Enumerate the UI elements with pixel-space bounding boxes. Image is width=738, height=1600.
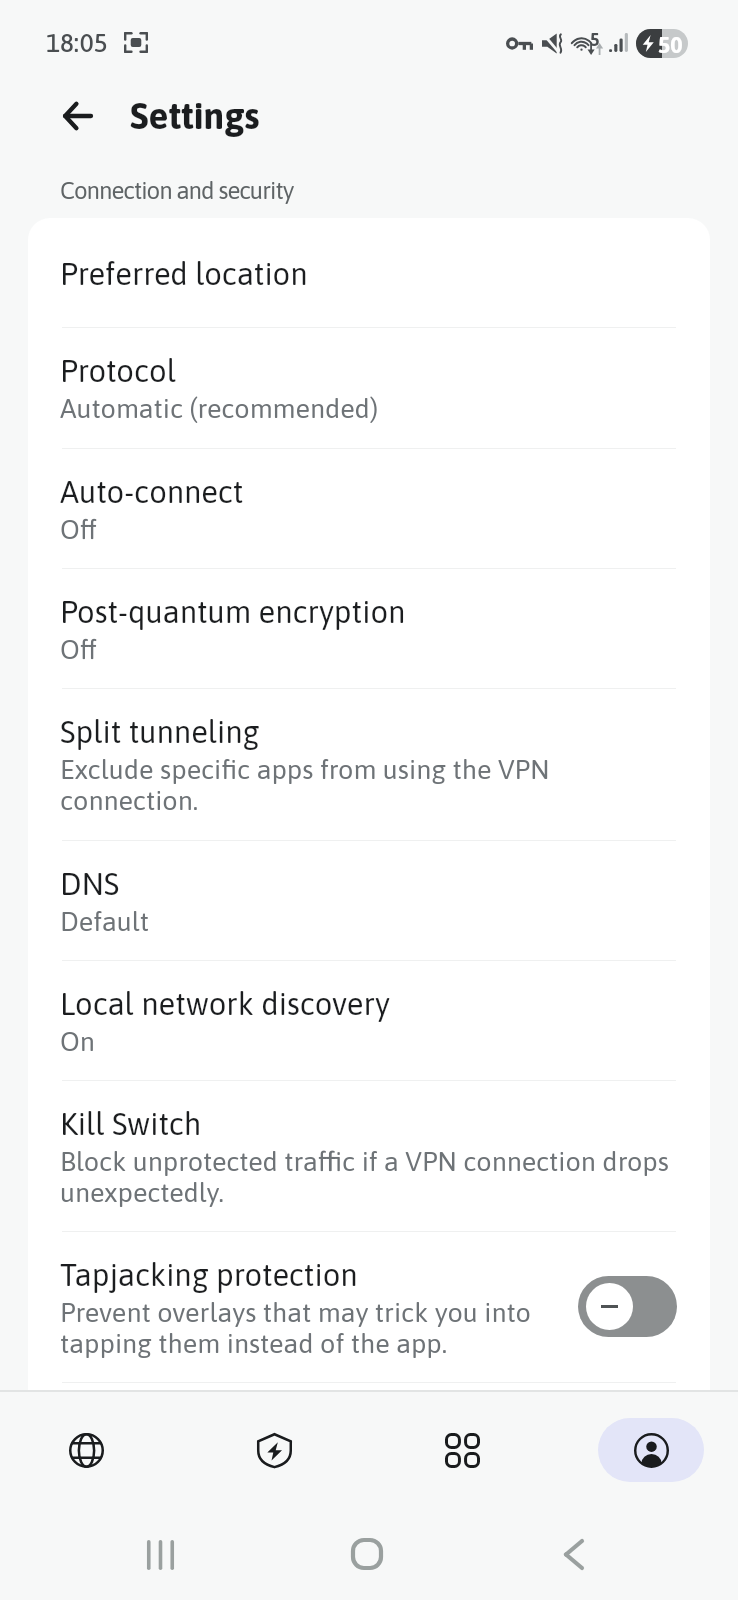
button[interactable]: Account	[598, 1418, 704, 1482]
button[interactable]: Recents	[131, 1526, 189, 1584]
staticText: Tapjacking protection	[60, 1257, 358, 1293]
staticText: On	[60, 1026, 95, 1057]
staticText: Off	[60, 514, 98, 545]
staticText: Exclude specific apps from using the VPN…	[60, 754, 677, 816]
staticText: Default	[60, 906, 150, 937]
button[interactable]: Post-quantum encryption	[28, 569, 710, 688]
staticText: Post-quantum encryption	[60, 594, 406, 630]
staticText: Local network discovery	[60, 986, 390, 1022]
button[interactable]: Back	[545, 1525, 603, 1583]
staticText: 5	[590, 29, 600, 50]
staticText: Auto-connect	[60, 474, 244, 510]
button[interactable]: Tapjacking protection	[28, 1232, 710, 1382]
button[interactable]: Split tunneling	[28, 689, 710, 840]
button[interactable]: DNS	[28, 841, 710, 960]
button[interactable]: Kill Switch	[28, 1081, 710, 1231]
staticText: Preferred location	[60, 256, 308, 292]
button[interactable]: Apps	[409, 1418, 515, 1482]
staticText: Protocol	[60, 353, 176, 389]
staticText: Off	[60, 634, 98, 665]
staticText: DNS	[60, 866, 120, 902]
button[interactable]: Home	[338, 1525, 396, 1583]
button[interactable]: Protection	[221, 1418, 327, 1482]
staticText: Automatic (recommended)	[60, 393, 379, 424]
button[interactable]: Preferred location	[28, 218, 710, 327]
staticText: 50	[658, 32, 683, 58]
button[interactable]: Auto-connect	[28, 449, 710, 568]
staticText: Block unprotected traffic if a VPN conne…	[60, 1146, 677, 1208]
staticText: Kill Switch	[60, 1106, 202, 1142]
button[interactable]: Locations	[33, 1418, 139, 1482]
button[interactable]: Back	[55, 94, 99, 138]
button[interactable]: Protocol	[28, 328, 710, 448]
staticText: Settings	[130, 94, 260, 136]
staticText: Split tunneling	[60, 714, 260, 750]
staticText: Prevent overlays that may trick you into…	[60, 1297, 566, 1359]
staticText: 18:05	[46, 28, 108, 58]
button[interactable]: Tapjacking protection	[578, 1276, 677, 1337]
button[interactable]: Local network discovery	[28, 961, 710, 1080]
staticText: Connection and security	[60, 177, 294, 205]
